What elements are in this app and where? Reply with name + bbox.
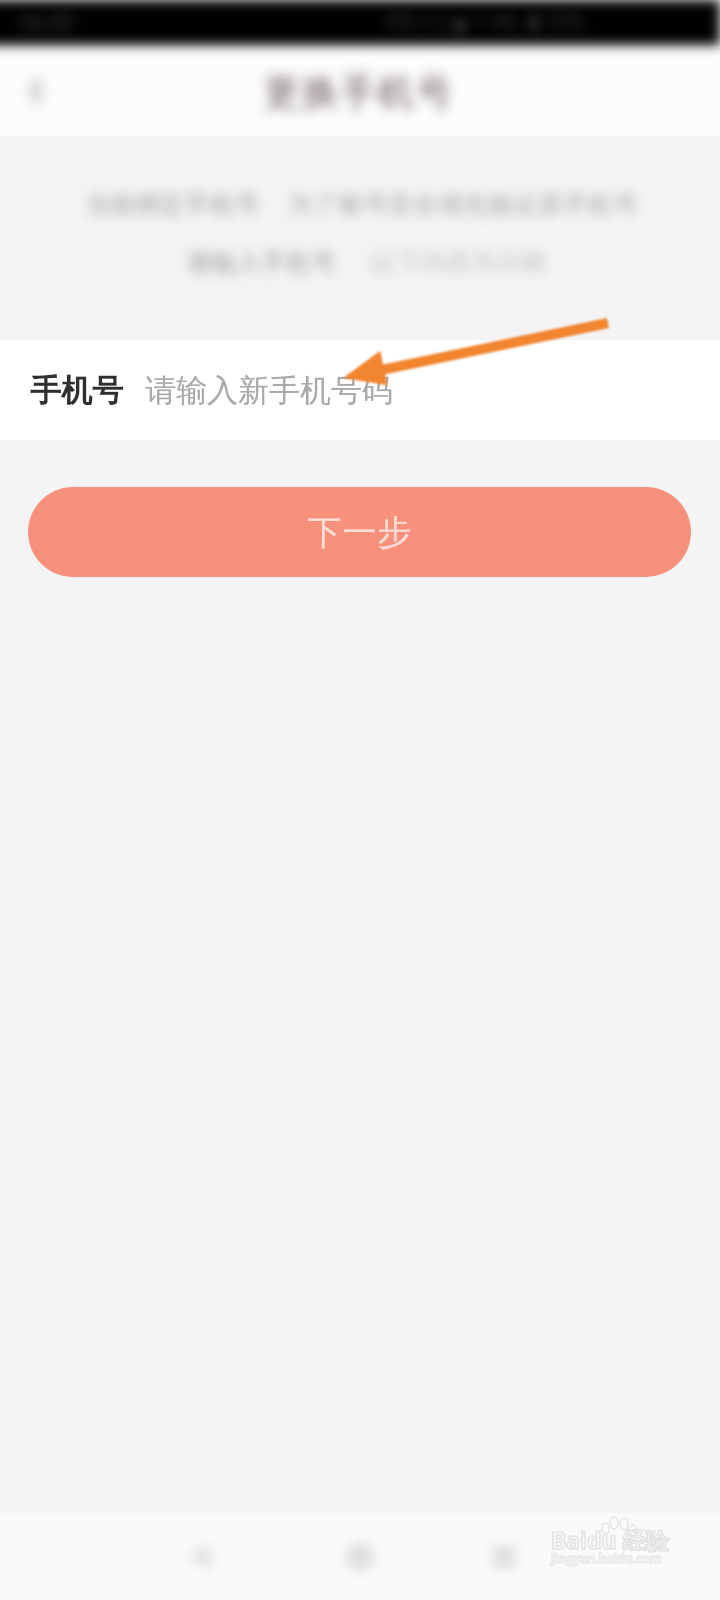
button[interactable]: Recents xyxy=(464,1513,544,1600)
button[interactable]: 手机号 xyxy=(0,340,720,440)
staticText: 请输入手机号 xyxy=(186,247,336,278)
staticText: 以下内容为示例 xyxy=(371,247,546,278)
staticText: HD ▯ ▯ ▲ ⚡ 4G ▮ 72% xyxy=(385,7,584,34)
staticText: 当前绑定手机号 xyxy=(85,189,260,220)
staticText: jingyan.baidu.com xyxy=(551,1550,662,1566)
staticText: Baidu 经验 xyxy=(551,1524,669,1555)
staticText: 下一步 xyxy=(307,511,412,554)
button[interactable]: Back xyxy=(160,1513,240,1600)
button[interactable]: Back xyxy=(8,63,64,119)
staticText: 手机号 xyxy=(30,371,123,410)
staticText: 16:35 xyxy=(17,6,74,36)
button[interactable]: Home xyxy=(320,1513,400,1600)
staticText: 请输入新手机号码 xyxy=(145,371,393,410)
staticText: 为了账号安全请先验证原手机号 xyxy=(288,189,638,220)
staticText: 更换手机号 xyxy=(263,69,453,116)
button[interactable]: 下一步 xyxy=(28,487,691,577)
